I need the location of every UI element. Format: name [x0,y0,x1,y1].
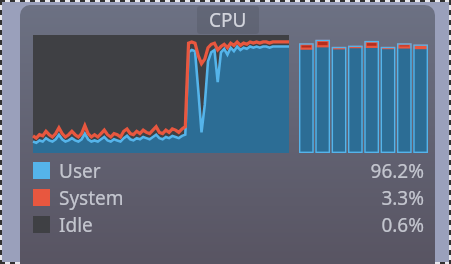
staticText: 0.6% [381,212,424,238]
staticText: Idle [59,212,93,238]
button[interactable]: System [33,184,424,211]
staticText: 3.3% [381,185,424,211]
button[interactable]: User [33,157,424,184]
button[interactable]: Per-core CPU usage [299,35,428,153]
button[interactable]: CPU history graph [33,35,289,153]
staticText: 96.2% [370,158,424,184]
staticText: User [59,158,101,184]
button[interactable]: CPU [197,6,259,34]
staticText: CPU [209,7,247,33]
button[interactable]: Idle [33,211,424,238]
staticText: System [59,185,124,211]
